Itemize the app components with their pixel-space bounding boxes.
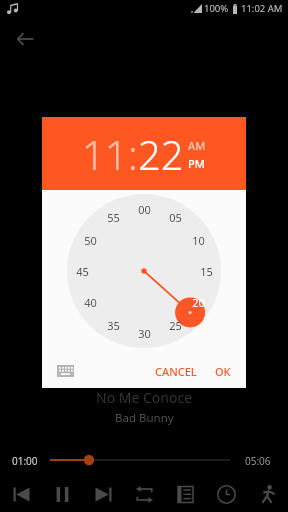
staticText: 55 [107,210,120,224]
button[interactable]: Minute dial [42,190,246,354]
staticText: 10 [192,233,205,247]
button[interactable]: Switch to keyboard input [51,358,79,384]
button[interactable]: 11 [82,127,128,181]
staticText: 05 [169,210,182,224]
button[interactable]: Previous [0,477,42,511]
button[interactable]: 22 [138,127,184,181]
staticText: 50 [84,233,97,247]
button[interactable]: Shake [247,477,288,511]
button[interactable]: Next [83,477,124,511]
button[interactable]: Repeat [124,477,165,511]
staticText: 01:00 [12,454,38,468]
staticText: 11:02 AM [241,2,283,15]
staticText: 11 [82,127,128,181]
staticText: 22 [138,127,184,181]
staticText: 35 [107,318,120,332]
staticText: 100% [204,2,229,15]
button[interactable]: PM [188,156,205,171]
staticText: OK [215,364,231,379]
button[interactable]: OK [208,358,238,385]
button[interactable]: Back [9,23,41,55]
button[interactable]: AM [188,138,206,153]
button[interactable]: Playlist [165,477,206,511]
button[interactable]: CANCEL [148,358,204,385]
staticText: 00 [138,202,151,216]
staticText: 15 [200,264,213,278]
staticText: 30 [138,326,151,340]
staticText: 20 [192,295,205,309]
staticText: Bad Bunny [115,410,174,426]
staticText: 05:06 [245,454,271,468]
staticText: AM [188,138,206,153]
staticText: 40 [84,295,97,309]
staticText: 45 [76,264,89,278]
staticText: : [128,127,138,181]
staticText: PM [188,156,205,171]
staticText: CANCEL [155,364,197,379]
staticText: 25 [169,318,182,332]
button[interactable]: Pause [42,477,83,511]
staticText: No Me Conoce [96,388,193,407]
button[interactable]: Sleep timer [206,477,247,511]
